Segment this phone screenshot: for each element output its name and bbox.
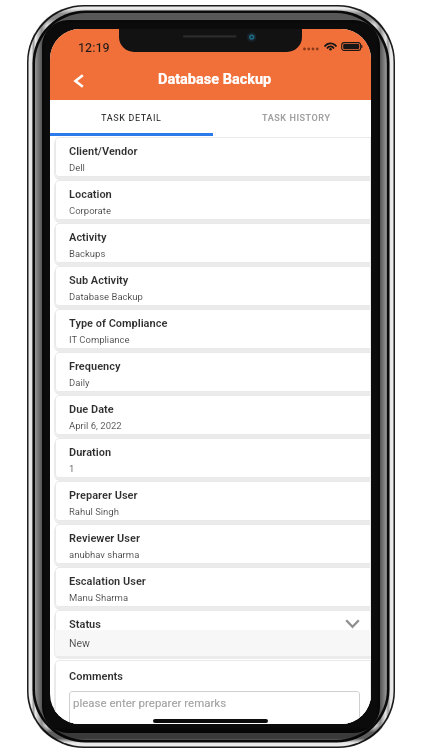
button[interactable]: Back [58, 57, 100, 100]
staticText: Comments [69, 670, 123, 683]
button[interactable]: Reviewer User [55, 524, 371, 564]
staticText: April 6, 2022 [69, 420, 122, 431]
staticText: IT Compliance [69, 334, 130, 345]
staticText: 1 [69, 463, 75, 474]
staticText: please enter preparer remarks [73, 696, 227, 709]
button[interactable]: TASK DETAIL [50, 100, 210, 136]
button[interactable]: Status [55, 610, 371, 656]
staticText: Frequency [69, 360, 121, 373]
staticText: Corporate [69, 205, 111, 216]
button[interactable]: Sub Activity [55, 266, 371, 306]
staticText: Manu Sharma [69, 592, 129, 603]
button[interactable]: Duration [55, 438, 371, 478]
staticText: Dell [69, 162, 85, 173]
button[interactable]: Type of Compliance [55, 309, 371, 349]
button[interactable]: Due Date [55, 395, 371, 435]
button[interactable]: Client/Vendor [55, 137, 371, 177]
staticText: Rahul Singh [69, 506, 119, 517]
staticText: TASK DETAIL [101, 113, 162, 124]
button[interactable]: Preparer User [55, 481, 371, 521]
button[interactable]: TASK HISTORY [210, 100, 371, 136]
staticText: Due Date [69, 403, 114, 416]
staticText: Database Backup [69, 291, 143, 302]
staticText: Preparer User [69, 489, 138, 502]
staticText: Client/Vendor [69, 145, 138, 158]
button[interactable]: Escalation User [55, 567, 371, 607]
staticText: Reviewer User [69, 532, 140, 545]
staticText: anubhav sharma [69, 549, 140, 560]
staticText: Activity [69, 231, 107, 244]
button[interactable]: Location [55, 180, 371, 220]
button[interactable]: Activity [55, 223, 371, 263]
button[interactable]: please enter preparer remarks [69, 691, 360, 724]
staticText: Type of Compliance [69, 317, 168, 330]
staticText: Status [69, 618, 101, 631]
staticText: Location [69, 188, 112, 201]
staticText: Backups [69, 248, 106, 259]
staticText: 12:19 [78, 40, 110, 55]
staticText: Duration [69, 446, 112, 459]
staticText: Database Backup [158, 71, 272, 88]
staticText: TASK HISTORY [262, 113, 331, 124]
staticText: Sub Activity [69, 274, 129, 287]
button[interactable]: Frequency [55, 352, 371, 392]
staticText: New [69, 637, 90, 649]
staticText: Escalation User [69, 575, 146, 588]
staticText: Daily [69, 377, 90, 388]
